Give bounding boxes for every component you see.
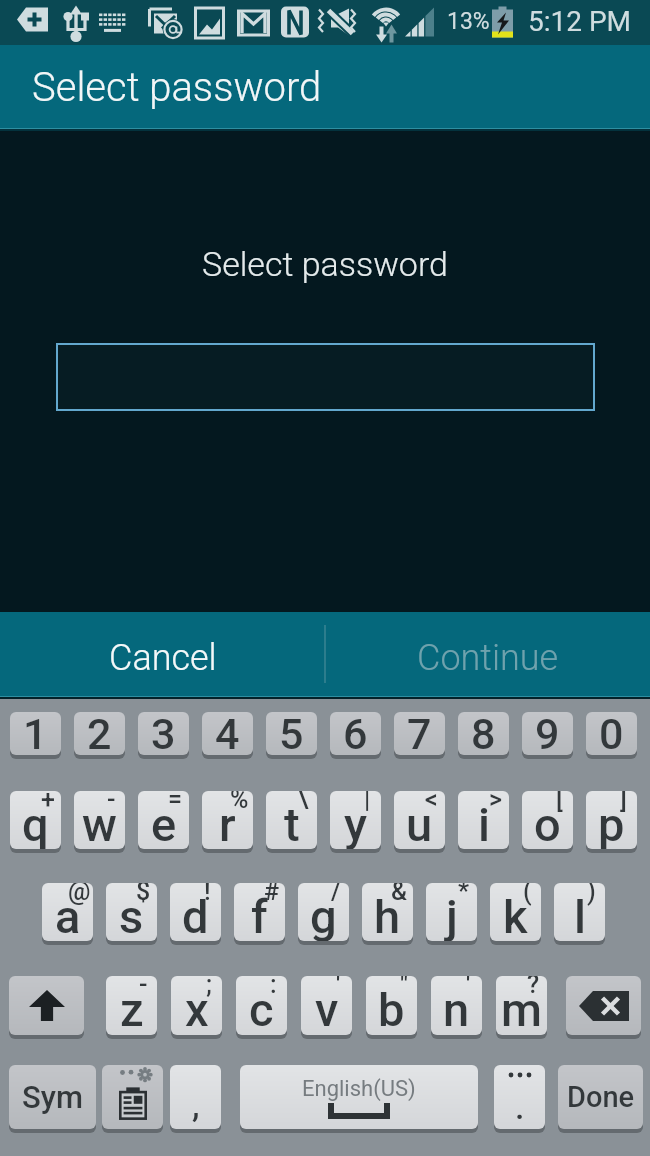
button[interactable]: k: [490, 883, 541, 941]
staticText: /: [331, 883, 341, 906]
button[interactable]: 1: [10, 712, 61, 755]
staticText: =: [168, 791, 183, 814]
staticText: *: [458, 883, 470, 906]
button[interactable]: 3: [138, 712, 189, 755]
button[interactable]: u: [394, 791, 445, 849]
staticText: 13%: [447, 8, 490, 35]
button[interactable]: t: [266, 791, 317, 849]
staticText: Continue: [417, 637, 559, 679]
staticText: 5: [279, 712, 304, 752]
button[interactable]: g: [298, 883, 349, 941]
button[interactable]: l: [554, 883, 605, 941]
staticText: ": [400, 976, 408, 999]
staticText: ?: [527, 976, 540, 999]
staticText: n: [443, 982, 470, 1035]
staticText: s: [119, 889, 144, 941]
button[interactable]: w: [74, 791, 125, 849]
button[interactable]: z: [106, 976, 157, 1035]
button[interactable]: x: [171, 976, 222, 1035]
button[interactable]: Cancel: [0, 612, 325, 696]
button[interactable]: j: [426, 883, 477, 941]
button[interactable]: ,: [170, 1065, 221, 1129]
button[interactable]: 4: [202, 712, 253, 755]
button[interactable]: Shift: [9, 976, 84, 1035]
staticText: ;: [206, 976, 212, 999]
button[interactable]: 7: [394, 712, 445, 755]
staticText: 4: [215, 712, 240, 752]
staticText: b: [378, 982, 405, 1035]
staticText: 1: [23, 712, 48, 752]
staticText: w: [82, 797, 117, 849]
button[interactable]: q: [10, 791, 61, 849]
staticText: c: [249, 982, 274, 1035]
staticText: \: [298, 791, 309, 814]
staticText: 3: [151, 712, 176, 752]
button[interactable]: d: [170, 883, 221, 941]
button[interactable]: p: [586, 791, 637, 849]
staticText: (: [523, 883, 532, 906]
staticText: o: [534, 797, 561, 849]
button[interactable]: i: [458, 791, 509, 849]
button[interactable]: h: [362, 883, 413, 941]
other: Shift: [29, 990, 65, 1021]
staticText: :: [270, 976, 277, 999]
button[interactable]: v: [301, 976, 352, 1035]
button[interactable]: Backspace: [566, 976, 641, 1035]
staticText: ,: [192, 1085, 200, 1125]
staticText: t: [284, 797, 300, 849]
button[interactable]: e: [138, 791, 189, 849]
staticText: &: [391, 883, 408, 906]
staticText: 8: [471, 712, 496, 752]
button[interactable]: Sym: [9, 1065, 96, 1129]
staticText: g: [310, 889, 337, 941]
staticText: English(US): [302, 1076, 416, 1102]
button[interactable]: b: [366, 976, 417, 1035]
button[interactable]: m: [496, 976, 547, 1035]
staticText: d: [182, 889, 209, 941]
button[interactable]: [56, 343, 595, 411]
button[interactable]: f: [234, 883, 285, 941]
staticText: r: [219, 797, 236, 849]
button[interactable]: 8: [458, 712, 509, 755]
staticText: 7: [407, 712, 432, 752]
staticText: !: [204, 883, 211, 906]
button[interactable]: 6: [330, 712, 381, 755]
button[interactable]: English(US): [240, 1065, 478, 1129]
staticText: ): [587, 883, 596, 906]
staticText: j: [446, 889, 458, 941]
staticText: a: [55, 889, 81, 941]
button[interactable]: c: [236, 976, 287, 1035]
button[interactable]: n: [431, 976, 482, 1035]
button[interactable]: s: [106, 883, 157, 941]
button[interactable]: 0: [586, 712, 637, 755]
staticText: [: [556, 791, 563, 814]
staticText: f: [251, 889, 268, 941]
other: Keyboard settings: [108, 1066, 158, 1128]
button[interactable]: 5: [266, 712, 317, 755]
button[interactable]: Keyboard settings: [102, 1065, 163, 1129]
staticText: $: [136, 883, 151, 906]
staticText: #: [264, 883, 280, 906]
button[interactable]: 9: [522, 712, 573, 755]
button[interactable]: r: [202, 791, 253, 849]
staticText: h: [374, 889, 401, 941]
staticText: u: [406, 797, 433, 849]
staticText: Sym: [22, 1079, 83, 1115]
button[interactable]: a: [42, 883, 93, 941]
staticText: ': [466, 976, 471, 999]
staticText: l: [574, 889, 586, 941]
staticText: q: [22, 797, 49, 849]
button[interactable]: .: [494, 1065, 545, 1129]
button[interactable]: Done: [558, 1065, 643, 1129]
button[interactable]: o: [522, 791, 573, 849]
other: Backspace: [579, 991, 629, 1021]
staticText: x: [185, 982, 209, 1035]
staticText: >: [489, 791, 502, 814]
button[interactable]: 2: [74, 712, 125, 755]
staticText: v: [315, 982, 339, 1035]
button[interactable]: y: [330, 791, 381, 849]
button[interactable]: Continue: [325, 612, 650, 696]
staticText: Cancel: [109, 637, 217, 679]
staticText: i: [478, 797, 490, 849]
staticText: @: [68, 883, 91, 906]
